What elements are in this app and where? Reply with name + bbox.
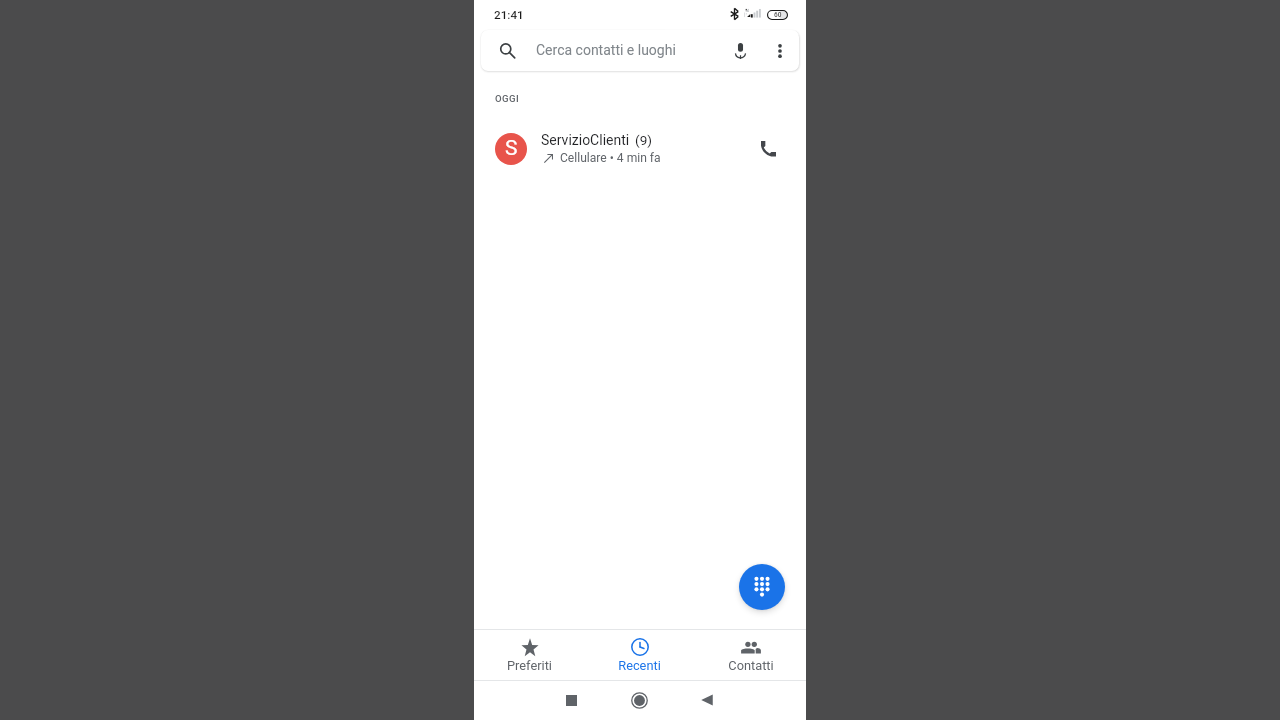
staticText: (9): [635, 132, 653, 148]
button[interactable]: Contatti: [695, 630, 806, 680]
button[interactable]: Recents: [557, 686, 585, 714]
staticText: Preferiti: [507, 658, 552, 673]
button[interactable]: Voice search: [724, 35, 756, 67]
button[interactable]: Cerca contatti e luoghi: [481, 30, 799, 71]
staticText: Cellulare • 4 min fa: [560, 151, 661, 165]
staticText: S: [505, 136, 518, 161]
button[interactable]: S: [474, 121, 806, 177]
staticText: ServizioClienti: [541, 132, 630, 148]
staticText: 21:41: [494, 8, 524, 22]
staticText: Cerca contatti e luoghi: [536, 42, 676, 58]
button[interactable]: Home: [625, 686, 653, 714]
staticText: Contatti: [728, 658, 774, 673]
button[interactable]: Back: [693, 686, 721, 714]
staticText: Recenti: [618, 658, 661, 673]
button[interactable]: Call: [748, 129, 788, 169]
staticText: 60: [774, 11, 782, 19]
button[interactable]: Dialpad: [739, 564, 785, 610]
staticText: OGGI: [495, 93, 520, 104]
button[interactable]: Recenti: [584, 630, 695, 680]
button[interactable]: More options: [764, 35, 796, 67]
button[interactable]: Preferiti: [474, 630, 584, 680]
